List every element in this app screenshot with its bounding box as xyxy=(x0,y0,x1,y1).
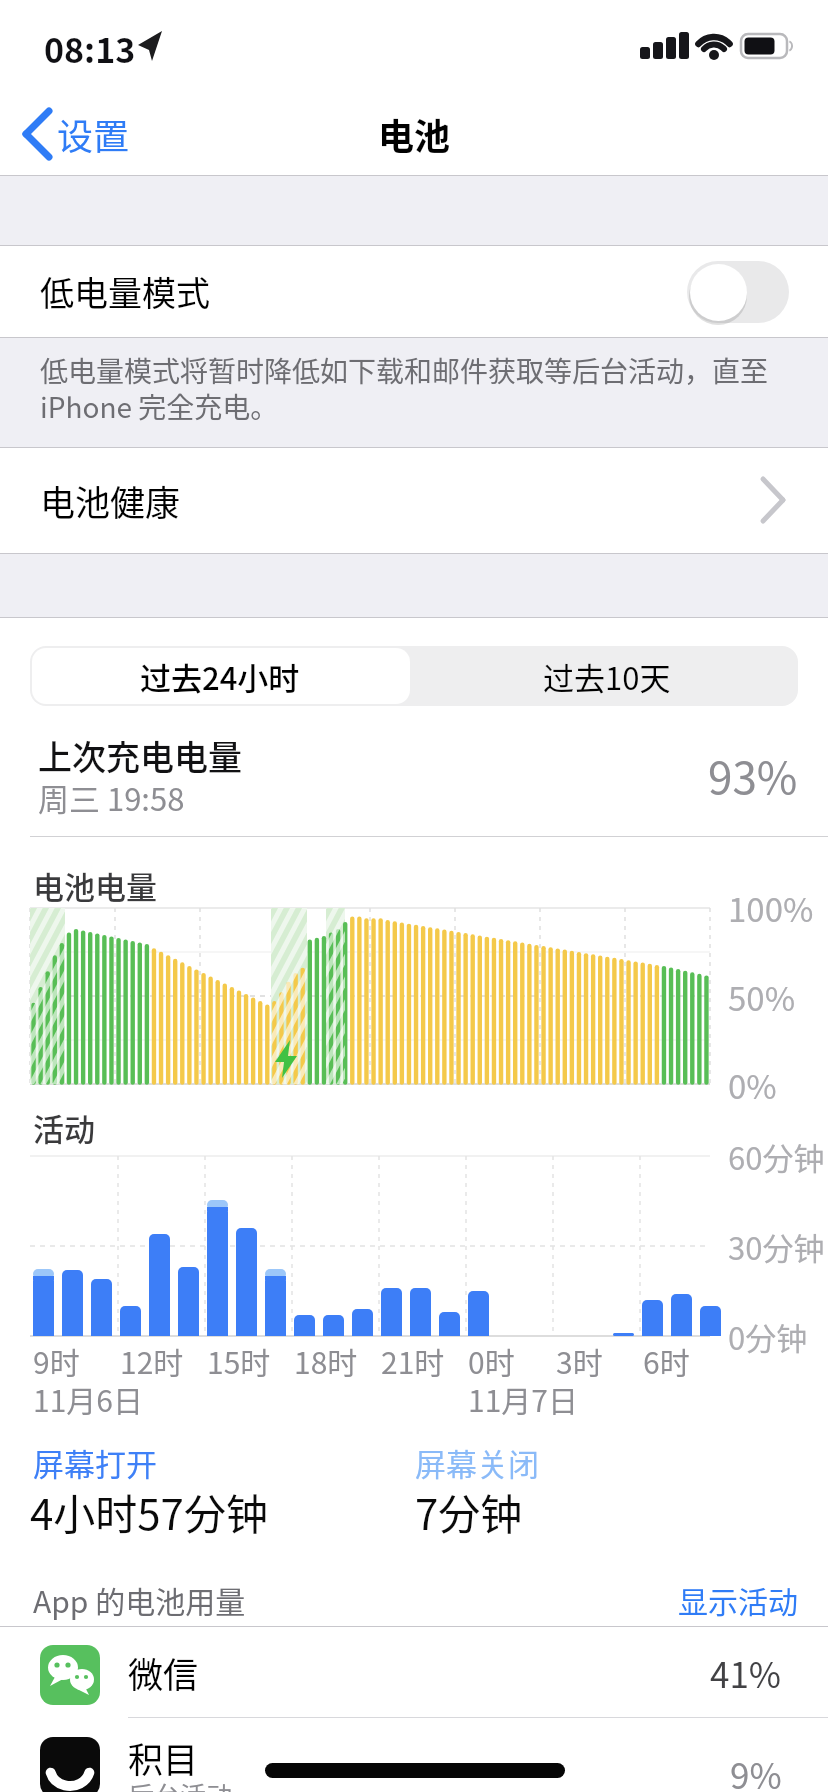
button[interactable] xyxy=(32,648,410,704)
button[interactable]: 设置 xyxy=(57,102,177,166)
staticText: 过去10天 xyxy=(543,654,671,699)
staticText: 11月7日 xyxy=(468,1377,578,1420)
staticText: 屏幕打开 xyxy=(33,1440,157,1485)
staticText: 100% xyxy=(728,884,814,932)
staticText: 0时 xyxy=(468,1339,515,1382)
button[interactable]: 低电量模式 xyxy=(0,246,828,337)
button[interactable]: 过去10天 xyxy=(416,646,798,706)
staticText: 21时 xyxy=(381,1339,445,1382)
staticText: 08:13 xyxy=(44,24,136,73)
staticText: 低电量模式 xyxy=(40,267,210,316)
button[interactable]: 微信 xyxy=(0,1627,828,1717)
staticText: 3时 xyxy=(556,1339,603,1382)
staticText: 7分钟 xyxy=(415,1481,523,1542)
staticText: 93% xyxy=(708,743,798,807)
staticText: iPhone 完全充电。 xyxy=(40,386,279,427)
staticText: 15时 xyxy=(207,1339,271,1382)
staticText: 积目 xyxy=(128,1732,199,1783)
staticText: 屏幕关闭 xyxy=(415,1440,539,1485)
staticText: 4小时57分钟 xyxy=(30,1481,268,1542)
staticText: 0分钟 xyxy=(728,1314,808,1359)
staticText: 电池健康 xyxy=(40,475,181,526)
staticText: 后台活动 xyxy=(128,1776,233,1792)
staticText: 显示活动 xyxy=(678,1578,798,1621)
staticText: 电池电量 xyxy=(33,863,157,908)
staticText: 电池 xyxy=(378,108,451,160)
staticText: 0% xyxy=(728,1061,777,1109)
staticText: 活动 xyxy=(33,1105,95,1150)
button[interactable]: 显示活动 xyxy=(500,1572,798,1626)
staticText: 设置 xyxy=(57,108,130,160)
staticText: 60分钟 xyxy=(728,1134,825,1179)
staticText: 6时 xyxy=(643,1339,690,1382)
staticText: 上次充电电量 xyxy=(38,731,242,780)
staticText: 41% xyxy=(710,1647,782,1698)
staticText: 18时 xyxy=(294,1339,358,1382)
staticText: 微信 xyxy=(128,1647,199,1698)
staticText: 低电量模式将暂时降低如下载和邮件获取等后台活动，直至 xyxy=(40,350,769,391)
staticText: 50% xyxy=(728,973,796,1021)
button[interactable]: 积目 xyxy=(0,1718,828,1792)
staticText: 9% xyxy=(730,1748,782,1792)
staticText: 周三 19:58 xyxy=(38,775,185,820)
staticText: 12时 xyxy=(120,1339,184,1382)
button[interactable]: 电池健康 xyxy=(0,448,828,553)
staticText: 9时 xyxy=(33,1339,80,1382)
staticText: 11月6日 xyxy=(33,1377,143,1420)
staticText: App 的电池用量 xyxy=(33,1578,246,1621)
staticText: 过去24小时 xyxy=(140,654,300,699)
button[interactable]: 过去24小时 xyxy=(30,646,410,706)
staticText: 30分钟 xyxy=(728,1224,825,1269)
